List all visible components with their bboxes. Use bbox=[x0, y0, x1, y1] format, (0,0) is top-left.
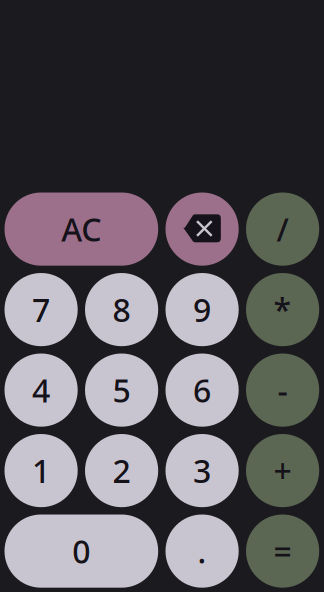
staticText: 5 bbox=[113, 369, 131, 411]
button[interactable]: 6 bbox=[165, 353, 239, 427]
button[interactable]: . bbox=[165, 514, 239, 588]
staticText: 4 bbox=[32, 369, 50, 411]
button[interactable]: 5 bbox=[85, 353, 158, 427]
staticText: 0 bbox=[72, 530, 90, 572]
button[interactable]: 8 bbox=[85, 273, 158, 346]
staticText: 8 bbox=[113, 288, 131, 331]
staticText: 1 bbox=[32, 449, 50, 492]
button[interactable]: 4 bbox=[4, 353, 78, 427]
staticText: = bbox=[274, 530, 292, 572]
button[interactable]: AC bbox=[4, 192, 158, 266]
button[interactable]: 0 bbox=[4, 514, 158, 588]
staticText: - bbox=[278, 369, 288, 411]
button[interactable]: 2 bbox=[85, 434, 158, 507]
button[interactable]: 9 bbox=[165, 273, 239, 346]
staticText: 2 bbox=[113, 449, 131, 492]
staticText: 6 bbox=[193, 369, 211, 411]
button[interactable]: + bbox=[246, 434, 319, 507]
staticText: 3 bbox=[193, 449, 211, 492]
button[interactable]: - bbox=[246, 353, 319, 427]
staticText: 7 bbox=[32, 288, 50, 331]
staticText: 9 bbox=[193, 288, 211, 331]
button[interactable]: 1 bbox=[4, 434, 78, 507]
staticText: . bbox=[198, 530, 207, 572]
staticText: AC bbox=[61, 208, 101, 250]
button[interactable]: 7 bbox=[4, 273, 78, 346]
button[interactable]: 3 bbox=[165, 434, 239, 507]
staticText: + bbox=[274, 449, 292, 492]
button[interactable]: = bbox=[246, 514, 319, 588]
button[interactable]: * bbox=[246, 273, 319, 346]
button[interactable]: / bbox=[246, 192, 319, 266]
staticText: * bbox=[274, 288, 292, 331]
button[interactable]: Delete bbox=[165, 192, 239, 266]
staticText: / bbox=[277, 208, 289, 250]
